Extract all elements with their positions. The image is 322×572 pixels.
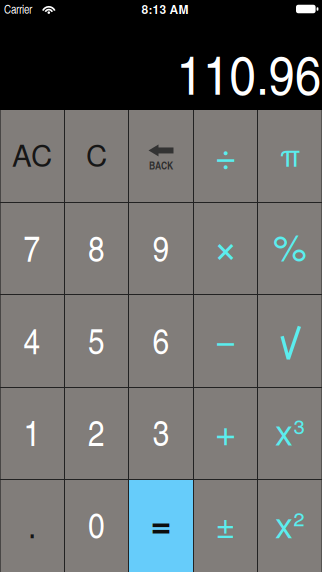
button[interactable]: 0 [65, 480, 128, 572]
button[interactable]: BACK [129, 110, 193, 202]
button[interactable]: x³ [258, 388, 322, 479]
staticText: x² [275, 497, 305, 548]
button[interactable]: + [194, 388, 257, 479]
staticText: 8 [88, 222, 105, 272]
staticText: C [86, 133, 107, 175]
staticText: 110.96 [185, 36, 322, 110]
staticText: 1 [23, 406, 40, 456]
staticText: 7 [23, 222, 40, 272]
button[interactable]: AC [0, 110, 64, 202]
staticText: 9 [152, 222, 169, 272]
button[interactable]: 9 [129, 203, 193, 294]
staticText: π [280, 132, 300, 175]
button[interactable]: ± [194, 480, 257, 572]
staticText: . [28, 498, 36, 548]
staticText: 0 [88, 499, 105, 549]
staticText: − [214, 310, 236, 365]
button[interactable]: 4 [0, 295, 64, 387]
staticText: ± [215, 499, 235, 548]
button[interactable]: = [129, 480, 193, 572]
staticText: % [273, 218, 307, 272]
button[interactable]: 3 [129, 388, 193, 479]
staticText: x³ [275, 404, 305, 456]
button[interactable]: ÷ [194, 110, 257, 202]
staticText: 5 [88, 314, 105, 364]
button[interactable]: 2 [65, 388, 128, 479]
staticText: = [150, 497, 171, 548]
button[interactable]: π [258, 110, 322, 202]
button[interactable]: 6 [129, 295, 193, 387]
button[interactable]: C [65, 110, 128, 202]
button[interactable]: 8 [65, 203, 128, 294]
staticText: BACK [149, 158, 173, 173]
staticText: 6 [152, 314, 169, 364]
staticText: × [213, 213, 238, 275]
staticText: 3 [152, 406, 169, 456]
staticText: 2 [88, 406, 105, 456]
staticText: AC [12, 133, 52, 175]
button[interactable]: 1 [0, 388, 64, 479]
button[interactable]: % [258, 203, 322, 294]
button[interactable]: × [194, 203, 257, 294]
button[interactable]: . [0, 480, 64, 572]
staticText: 8:13 AM [141, 0, 188, 18]
staticText: 4 [23, 314, 40, 364]
button[interactable]: 5 [65, 295, 128, 387]
staticText: ÷ [214, 126, 236, 181]
button[interactable]: x² [258, 480, 322, 572]
button[interactable]: − [194, 295, 257, 387]
staticText: + [214, 403, 236, 457]
button[interactable]: 7 [0, 203, 64, 294]
button[interactable] [258, 295, 322, 387]
staticText: Carrier [4, 1, 32, 17]
